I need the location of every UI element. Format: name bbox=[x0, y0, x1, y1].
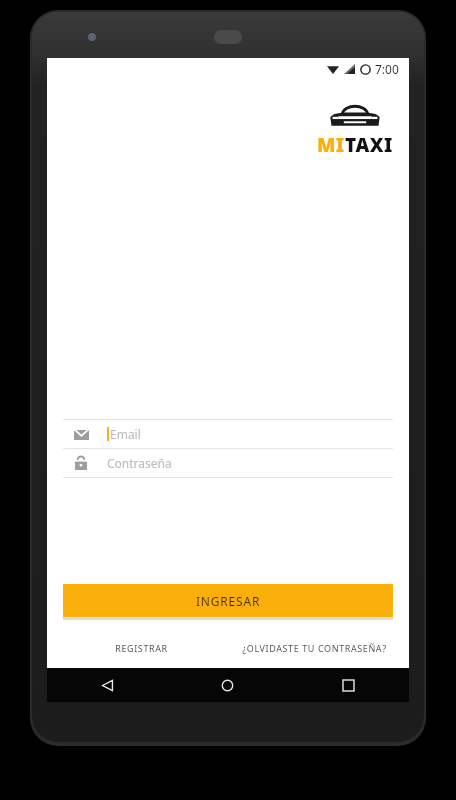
staticText: TAXI bbox=[345, 132, 393, 158]
button[interactable]: INGRESAR bbox=[63, 584, 393, 617]
button[interactable]: Back bbox=[47, 668, 167, 702]
button[interactable]: Home bbox=[167, 668, 288, 702]
staticText: MI bbox=[317, 132, 345, 158]
button[interactable]: Recents bbox=[288, 668, 409, 702]
button[interactable]: Email bbox=[63, 420, 393, 448]
button[interactable]: ¿OLVIDASTE TU CONTRASEÑA? bbox=[228, 634, 401, 662]
staticText: Email bbox=[110, 426, 141, 442]
staticText: Contraseña bbox=[107, 455, 172, 471]
staticText: INGRESAR bbox=[196, 593, 261, 609]
button[interactable]: Contraseña bbox=[63, 449, 393, 477]
staticText: 7:00 bbox=[375, 61, 399, 77]
staticText: ¿OLVIDASTE TU CONTRASEÑA? bbox=[242, 642, 387, 654]
staticText: REGISTRAR bbox=[115, 642, 168, 654]
button[interactable]: REGISTRAR bbox=[55, 634, 228, 662]
